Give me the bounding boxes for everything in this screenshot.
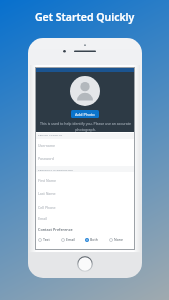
button[interactable]: Email bbox=[36, 216, 134, 227]
button[interactable]: Email bbox=[61, 237, 75, 242]
staticText: Last Name bbox=[38, 191, 56, 196]
staticText: Email bbox=[66, 237, 75, 242]
staticText: Get Started Quickly bbox=[35, 10, 135, 24]
staticText: Email bbox=[38, 216, 47, 221]
button[interactable]: First Name bbox=[36, 178, 134, 189]
button[interactable]: Password bbox=[36, 156, 134, 167]
button[interactable]: Last Name bbox=[36, 191, 134, 202]
button[interactable]: Username bbox=[36, 143, 134, 154]
button[interactable]: Add Photo bbox=[71, 110, 99, 118]
button[interactable]: Cell Phone bbox=[36, 205, 134, 216]
staticText: This is used to help identify you. Pleas… bbox=[40, 121, 131, 132]
staticText: CREATE ACCOUNT bbox=[38, 133, 63, 136]
button[interactable]: None bbox=[109, 237, 123, 242]
staticText: Add Photo bbox=[75, 112, 95, 117]
staticText: Username bbox=[38, 143, 56, 148]
staticText: First Name bbox=[38, 178, 56, 183]
staticText: Cell Phone bbox=[38, 205, 56, 210]
staticText: Both bbox=[90, 237, 98, 242]
staticText: None bbox=[114, 237, 123, 242]
staticText: Contact Preference bbox=[38, 227, 73, 232]
staticText: Text bbox=[43, 237, 50, 242]
staticText: Password bbox=[38, 156, 54, 161]
button[interactable]: Home bbox=[77, 256, 93, 272]
staticText: PERSONAL INFORMATION bbox=[38, 168, 74, 171]
button[interactable]: Both bbox=[85, 237, 98, 242]
button[interactable]: Text bbox=[38, 237, 50, 242]
